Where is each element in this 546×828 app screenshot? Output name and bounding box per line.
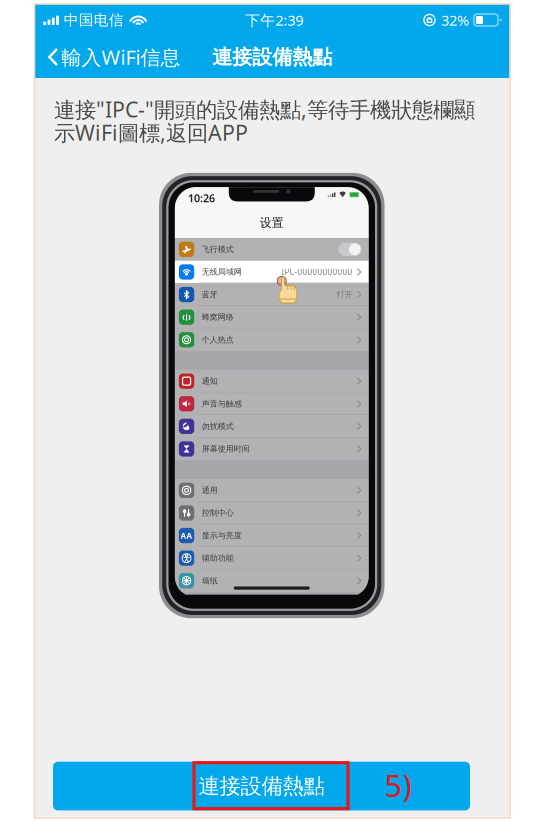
staticText: 个人热点 xyxy=(202,335,234,345)
staticText: 辅助功能 xyxy=(202,553,234,563)
staticText: 显示与亮度 xyxy=(202,531,242,540)
staticText: 屏幕使用时间 xyxy=(202,444,250,454)
staticText: 通用 xyxy=(202,485,218,495)
button[interactable]: 連接設備熱點 xyxy=(53,762,470,810)
staticText: 下午2:39 xyxy=(245,10,303,30)
staticText: 蓝牙 xyxy=(202,290,218,299)
staticText: 5) xyxy=(384,765,411,805)
staticText: 10:26 xyxy=(188,191,215,205)
staticText: IPC-00000000000 xyxy=(282,267,353,277)
staticText: 蜂窝网络 xyxy=(202,312,234,322)
staticText: 飞行模式 xyxy=(202,244,234,254)
staticText: 連接設備熱點 xyxy=(212,45,332,69)
staticText: AA xyxy=(181,530,193,541)
staticText: 墙纸 xyxy=(202,576,218,586)
staticText: 设置 xyxy=(260,215,284,230)
button[interactable]: 輸入WiFi信息 xyxy=(34,36,188,78)
staticText: 声音与触感 xyxy=(202,399,242,409)
staticText: 打开 xyxy=(337,290,353,299)
staticText: 无线局域网 xyxy=(202,267,242,277)
staticText: 連接設備熱點 xyxy=(198,773,324,799)
staticText: 勿扰模式 xyxy=(202,421,234,431)
staticText: 控制中心 xyxy=(202,508,234,518)
staticText: 連接"IPC-"開頭的設備熱點,等待手機狀態欄顯示WiFi圖標,返回APP xyxy=(54,95,475,147)
staticText: 32% xyxy=(441,10,469,30)
staticText: 通知 xyxy=(202,376,218,386)
staticText: 輸入WiFi信息 xyxy=(61,44,180,70)
staticText: 中国电信 xyxy=(64,11,124,29)
